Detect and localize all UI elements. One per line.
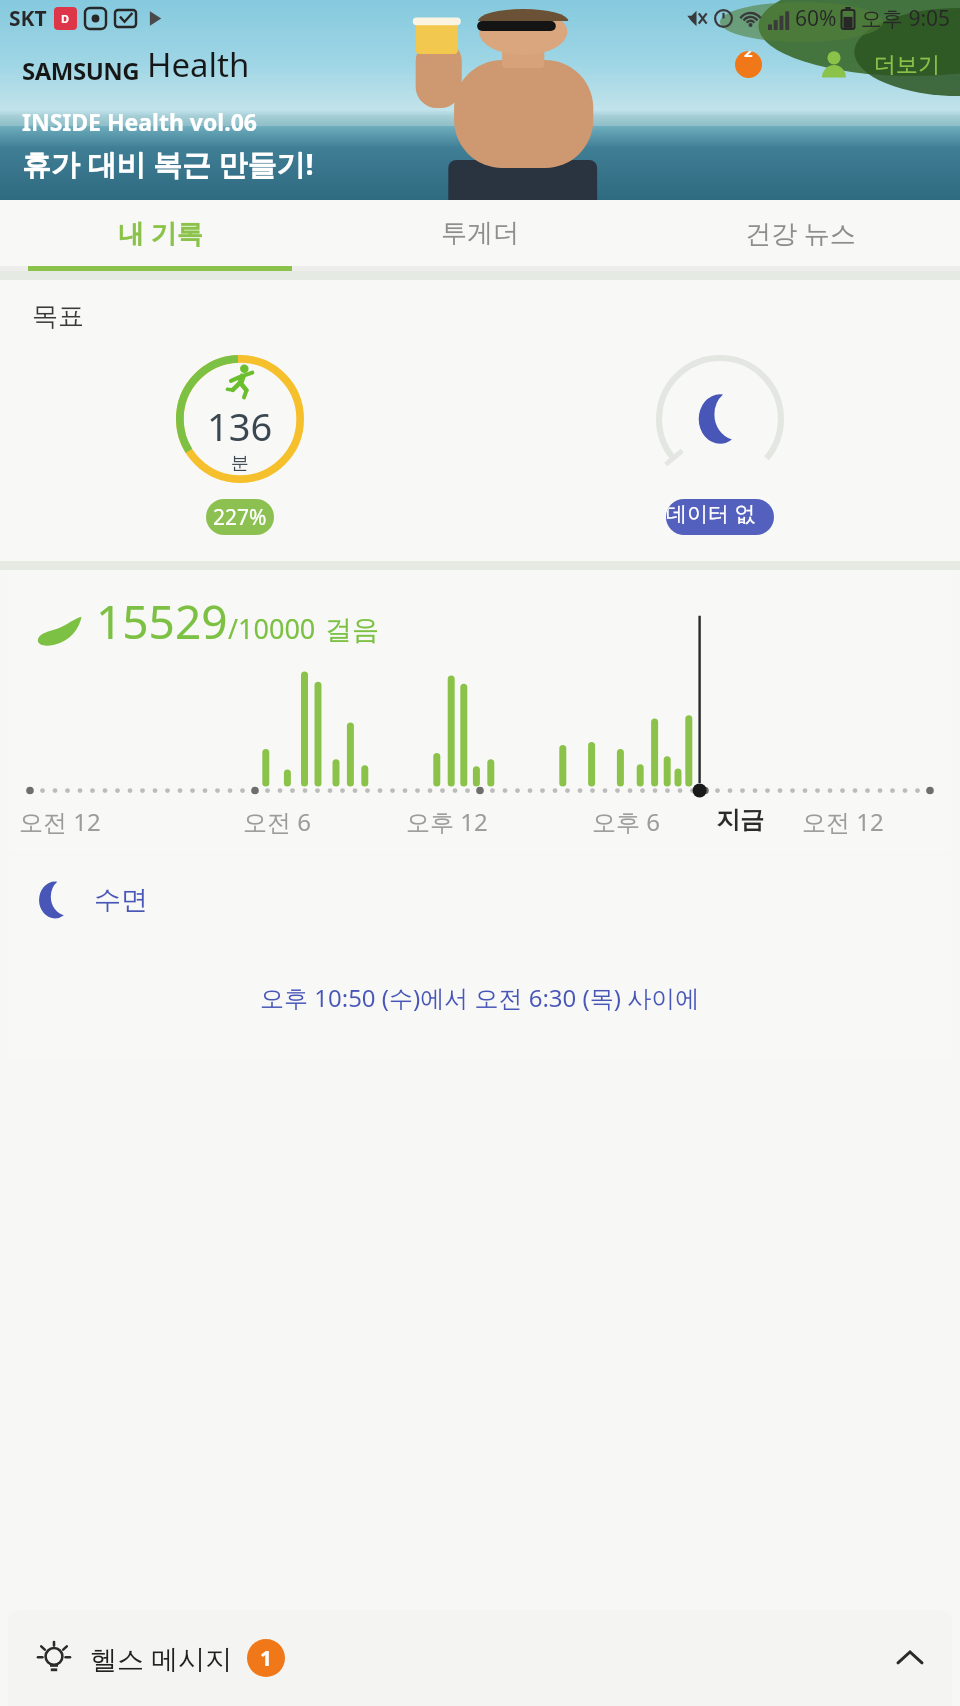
staticText: SKT xyxy=(9,4,47,33)
staticText: 오후 10:50 (수)에서 오전 6:30 (목) 사이에 xyxy=(260,981,700,1014)
staticText: 더보기 xyxy=(874,51,940,79)
staticText: 136 xyxy=(207,400,273,452)
staticText: 내 기록 xyxy=(118,215,203,251)
button[interactable]: 헬스 메시지 xyxy=(8,1610,952,1706)
staticText: 60% xyxy=(795,4,837,33)
staticText: D xyxy=(61,11,70,26)
staticText: 휴가 대비 복근 만들기! xyxy=(22,144,314,184)
button[interactable]: 데이터 없음 xyxy=(666,499,774,535)
staticText: 건강 뉴스 xyxy=(745,215,856,251)
button[interactable]: 활동 목표 xyxy=(176,355,304,483)
staticText: 오전 12 xyxy=(19,805,101,838)
button[interactable]: 수면 xyxy=(8,857,952,1058)
staticText: INSIDE Health vol.06 xyxy=(22,106,257,137)
staticText: 걸음 xyxy=(325,613,379,647)
staticText: 1 xyxy=(260,1644,273,1673)
staticText: 지금 xyxy=(716,805,764,835)
staticText: 오후 12 xyxy=(406,805,488,838)
staticText: SAMSUNG xyxy=(22,54,140,87)
staticText: 오후 6 xyxy=(592,805,660,838)
staticText: 데이터 없음 xyxy=(666,499,774,535)
staticText: 수면 xyxy=(94,883,148,917)
staticText: 2 xyxy=(744,51,753,61)
button[interactable]: 15529 xyxy=(8,570,952,853)
button[interactable]: 투게더 xyxy=(320,200,640,266)
staticText: 227% xyxy=(213,503,267,532)
staticText: 헬스 메시지 xyxy=(90,1640,233,1677)
staticText: 오전 6 xyxy=(243,805,311,838)
button[interactable]: 건강 뉴스 xyxy=(640,200,960,266)
button[interactable]: 수면 목표 xyxy=(656,355,784,483)
button[interactable]: 내 기록 xyxy=(0,200,320,266)
staticText: 목표 xyxy=(32,300,84,333)
staticText: Health xyxy=(147,42,250,87)
staticText: 오전 12 xyxy=(802,805,884,838)
staticText: 투게더 xyxy=(441,217,519,250)
staticText: 분 xyxy=(231,452,249,475)
button[interactable]: Expand xyxy=(888,1636,932,1680)
staticText: /10000 xyxy=(228,610,316,647)
button[interactable]: Profile xyxy=(814,45,854,85)
button[interactable]: 더보기 xyxy=(868,45,946,85)
button[interactable]: 227% xyxy=(206,499,274,535)
staticText: 15529 xyxy=(96,590,228,653)
staticText: 오후 9:05 xyxy=(861,4,951,33)
